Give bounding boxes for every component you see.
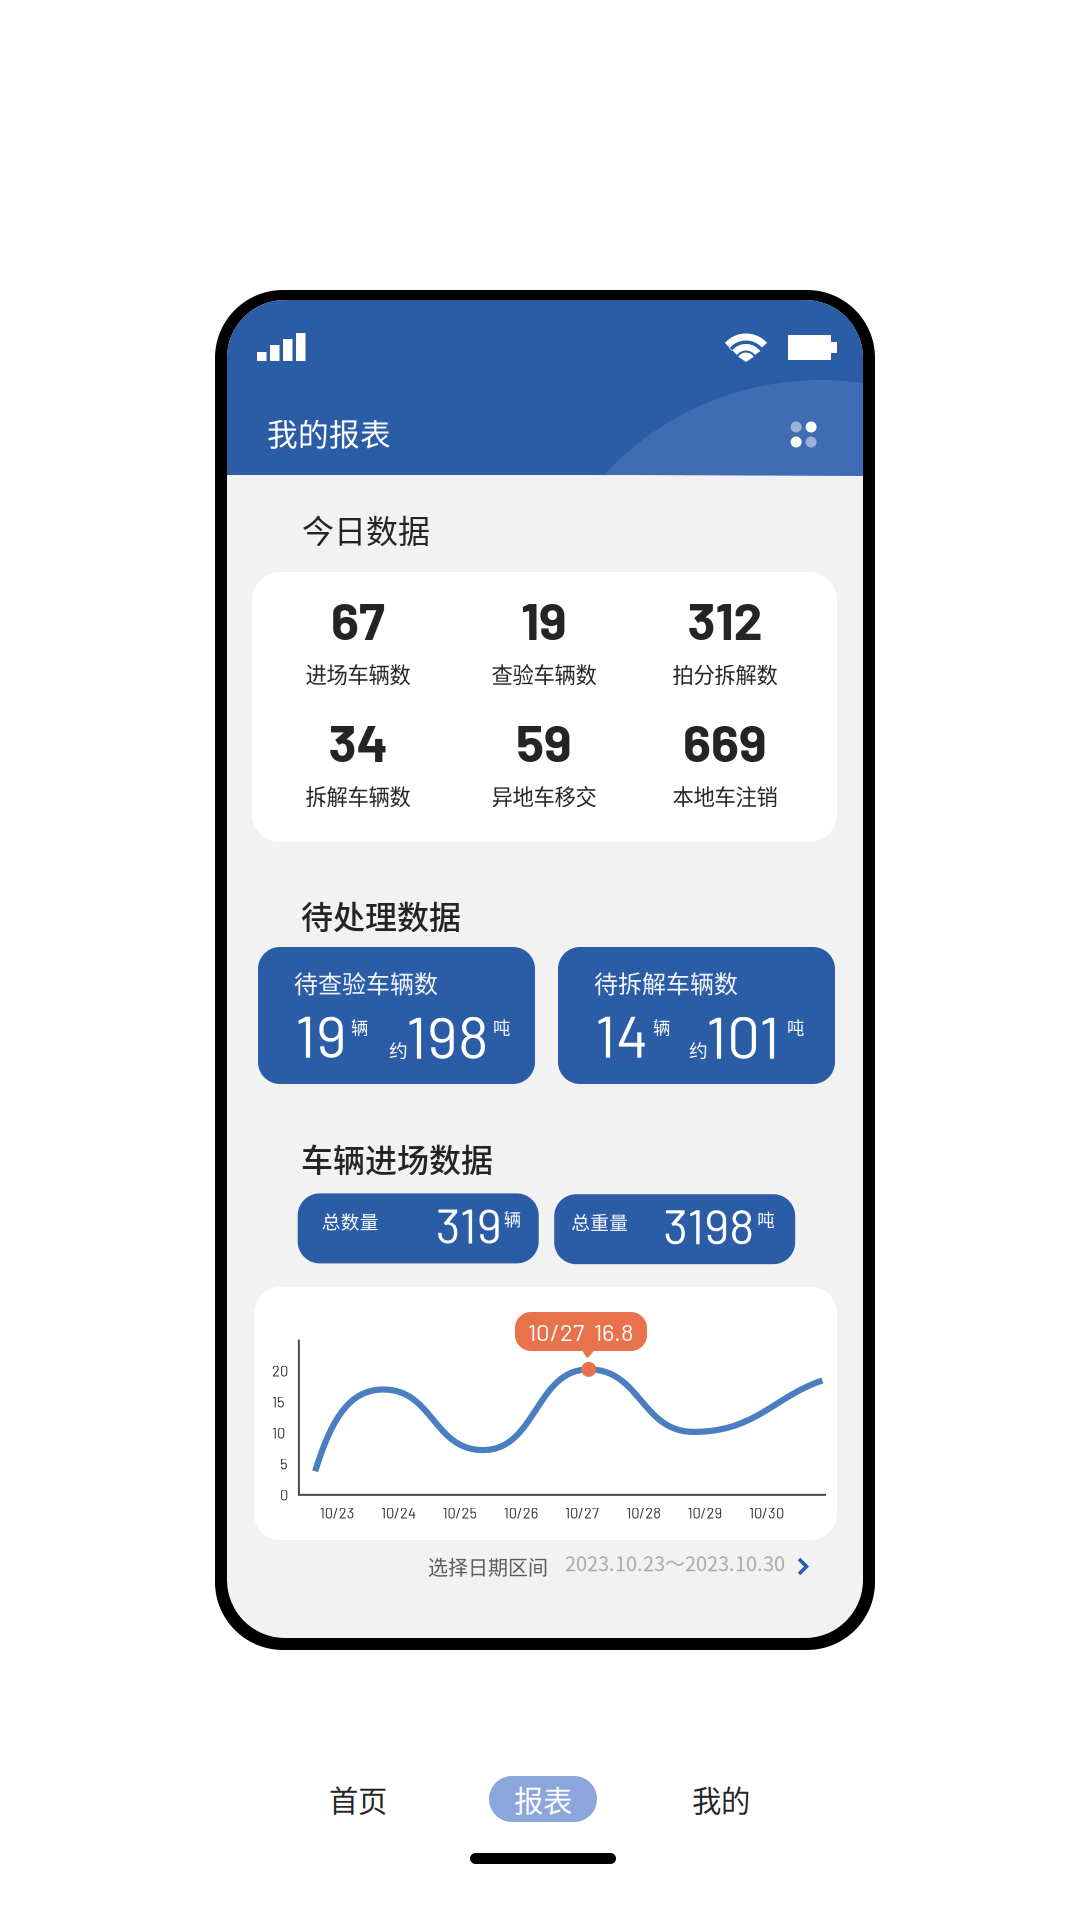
staticText: 拆解车辆数 [305,780,410,811]
staticText: 3198 [663,1196,754,1254]
button[interactable]: 选择日期区间 [227,1548,863,1592]
staticText: 辆 [351,1014,368,1039]
staticText: 101 [706,1000,780,1070]
staticText: 10/27 16.8 [528,1317,634,1346]
staticText: 10/28 [626,1504,661,1521]
staticText: 19 [295,999,347,1069]
staticText: 异地车移交 [491,780,596,811]
button[interactable]: 待拆解车辆数 [558,947,835,1084]
staticText: 拍分拆解数 [672,658,777,689]
staticText: 本地车注销 [672,780,777,811]
staticText: 198 [406,1000,489,1070]
staticText: 10/23 [320,1504,355,1521]
staticText: 我的报表 [267,410,391,454]
staticText: 吨 [787,1014,804,1039]
staticText: 报表 [514,1778,572,1820]
staticText: 总重量 [571,1208,628,1235]
staticText: 0 [280,1486,288,1503]
staticText: 我的 [692,1778,750,1820]
staticText: 待查验车辆数 [294,965,438,1000]
staticText: 67 [331,588,385,650]
staticText: 19 [521,588,567,650]
staticText: 辆 [504,1205,521,1230]
staticText: 进场车辆数 [305,658,410,689]
staticText: 10/26 [504,1504,539,1521]
staticText: 待拆解车辆数 [594,965,738,1000]
staticText: 10/27 [565,1504,599,1521]
button[interactable]: 总重量 [554,1194,795,1264]
staticText: 59 [516,710,572,772]
staticText: 选择日期区间 [428,1552,548,1581]
button[interactable]: 待查验车辆数 [258,947,535,1084]
staticText: 669 [683,710,767,772]
staticText: 约 [689,1036,708,1063]
staticText: 10/24 [381,1504,416,1521]
button[interactable]: 我的 [646,1772,796,1826]
staticText: 312 [687,588,762,650]
staticText: 34 [328,710,387,772]
staticText: 今日数据 [302,506,430,552]
staticText: 2023.10.23～2023.10.30 [565,1548,785,1577]
staticText: 吨 [493,1014,510,1039]
button[interactable]: 首页 [283,1772,433,1826]
staticText: 5 [280,1455,288,1472]
staticText: 待处理数据 [301,892,461,938]
button[interactable]: More options [785,415,822,452]
staticText: 319 [436,1195,502,1253]
staticText: 20 [272,1362,288,1379]
staticText: 10/29 [688,1504,723,1521]
button[interactable]: 总数量 [298,1193,539,1263]
staticText: 车辆进场数据 [301,1135,493,1181]
staticText: 查验车辆数 [491,658,596,689]
staticText: 15 [272,1393,285,1410]
staticText: 10 [272,1424,285,1441]
staticText: 10/30 [749,1504,784,1521]
staticText: 吨 [757,1206,774,1231]
staticText: 10/25 [442,1504,477,1521]
button[interactable]: 报表 [468,1772,618,1826]
staticText: 14 [595,999,648,1069]
staticText: 总数量 [322,1207,379,1234]
staticText: 首页 [329,1778,387,1820]
staticText: 约 [389,1036,408,1063]
staticText: 辆 [653,1014,670,1039]
